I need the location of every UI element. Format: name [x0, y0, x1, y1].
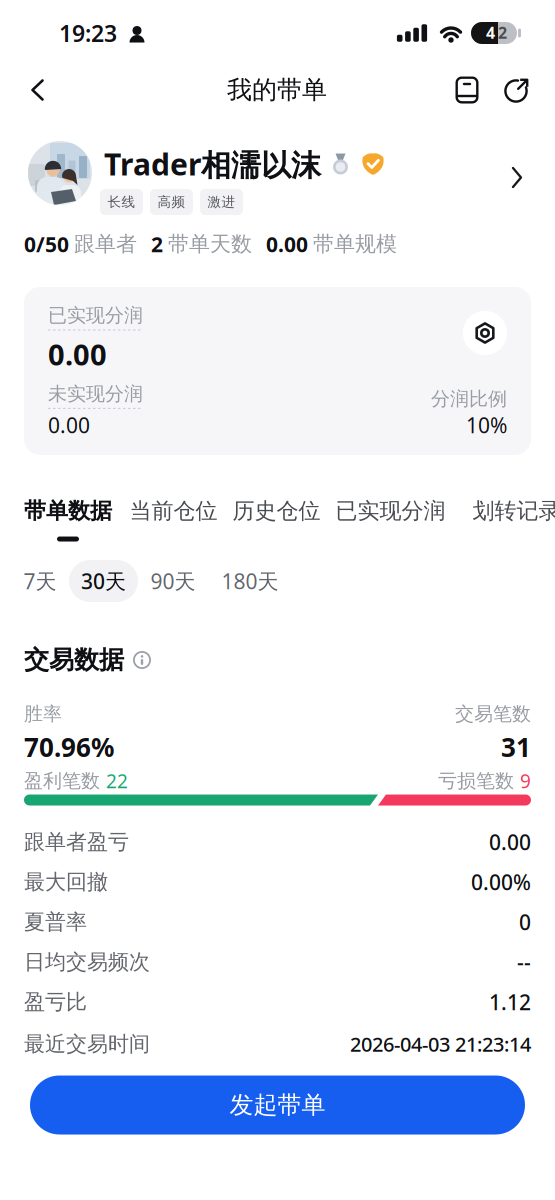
staticText: 90天	[150, 567, 195, 595]
staticText: 盈亏比	[24, 989, 87, 1015]
staticText: 发起带单	[229, 1090, 325, 1120]
staticText: 盈利笔数	[24, 769, 100, 793]
staticText: 历史仓位	[232, 497, 320, 525]
staticText: 夏普率	[24, 909, 87, 935]
staticText: 跟单者	[74, 231, 137, 257]
button[interactable]: 180天	[221, 567, 278, 595]
staticText: 0.00	[489, 828, 531, 856]
staticText: 30天	[81, 567, 126, 595]
staticText: 胜率	[24, 702, 62, 726]
staticText: --	[517, 948, 531, 976]
staticText: 激进	[207, 193, 235, 210]
staticText: 划转记录	[472, 497, 555, 525]
staticText: 高频	[157, 193, 185, 210]
staticText: 180天	[221, 567, 278, 595]
staticText: 交易笔数	[455, 702, 531, 726]
button[interactable]: 30天	[69, 560, 138, 602]
staticText: 2026-04-03 21:23:14	[350, 1030, 531, 1058]
staticText: 交易数据	[24, 644, 124, 676]
staticText: 未实现分润	[48, 382, 143, 406]
button[interactable]: 当前仓位	[129, 497, 217, 525]
staticText: 19:23	[59, 17, 117, 49]
button[interactable]: Share	[497, 70, 537, 110]
staticText: 2	[498, 22, 507, 43]
staticText: Trader相濡以沫	[104, 143, 321, 184]
staticText: 长线	[107, 193, 135, 210]
staticText: 70.96%	[24, 729, 114, 765]
button[interactable]: 划转记录	[472, 497, 555, 525]
button[interactable]: 发起带单	[30, 1075, 525, 1134]
staticText: 最近交易时间	[24, 1031, 150, 1057]
button[interactable]: Settings	[463, 311, 507, 355]
staticText: 7天	[23, 567, 56, 595]
button[interactable]: 90天	[150, 567, 195, 595]
staticText: 已实现分润	[335, 497, 445, 525]
staticText: 10%	[466, 411, 507, 439]
staticText: 31	[501, 729, 531, 765]
staticText: 最大回撤	[24, 869, 108, 895]
staticText: 日均交易频次	[24, 949, 150, 975]
staticText: 带单规模	[313, 231, 397, 257]
staticText: 2	[151, 230, 163, 258]
staticText: 分润比例	[431, 387, 507, 411]
staticText: 1.12	[489, 988, 531, 1016]
staticText: 0.00	[48, 334, 107, 374]
button[interactable]: 7天	[23, 567, 56, 595]
button[interactable]: 历史仓位	[232, 497, 320, 525]
staticText: 已实现分润	[48, 303, 143, 327]
staticText: 0	[519, 908, 531, 936]
staticText: 0/50	[24, 230, 69, 258]
staticText: 当前仓位	[129, 497, 217, 525]
button[interactable]: 已实现分润	[335, 497, 445, 525]
button[interactable]: Trader相濡以沫	[14, 140, 541, 206]
staticText: 我的带单	[227, 74, 327, 106]
staticText: 4	[486, 22, 495, 43]
staticText: 9	[520, 768, 531, 794]
staticText: 亏损笔数	[438, 769, 514, 793]
staticText: 跟单者盈亏	[24, 829, 129, 855]
button[interactable]: 带单数据	[24, 497, 112, 525]
button[interactable]: Orders	[447, 70, 487, 110]
staticText: 0.00%	[471, 868, 531, 896]
button[interactable]: Back	[18, 70, 58, 110]
staticText: 22	[106, 768, 128, 794]
staticText: 0.00	[266, 230, 308, 258]
staticText: 0.00	[48, 411, 90, 439]
staticText: 带单数据	[24, 497, 112, 525]
staticText: 带单天数	[168, 231, 252, 257]
